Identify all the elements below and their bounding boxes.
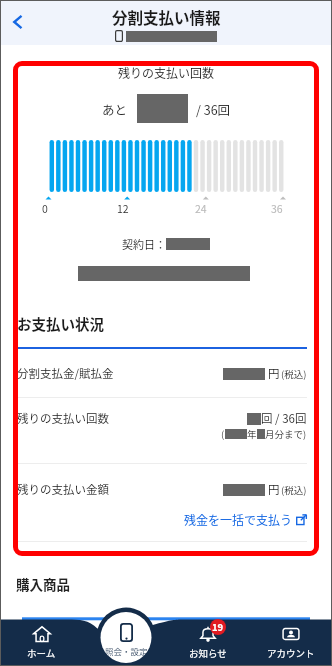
button[interactable]: 残りの支払い金額 (17, 481, 307, 498)
staticText: 契約日： (122, 236, 166, 252)
staticText: お知らせ (189, 646, 227, 660)
button[interactable]: 照会・設定 (101, 612, 152, 663)
button[interactable]: 戻る (7, 11, 29, 33)
staticText: 購入商品 (16, 574, 70, 594)
staticText: 月分まで) (265, 427, 307, 441)
staticText: 残りの支払い金額 (17, 481, 109, 498)
button[interactable]: 19 (166, 625, 249, 666)
button[interactable]: ホーム (0, 625, 83, 666)
staticText: 残金を一括で支払う (184, 511, 293, 528)
staticText: 12 (117, 201, 129, 216)
staticText: お支払い状況 (17, 313, 104, 334)
staticText: 照会・設定 (105, 645, 148, 657)
staticText: 残りの支払い回数 (13, 64, 319, 81)
staticText: 円 (268, 365, 280, 382)
staticText: 残りの支払い回数 (17, 410, 109, 427)
staticText: あと (102, 100, 128, 118)
staticText: アカウント (267, 646, 315, 660)
staticText: ( (221, 427, 225, 441)
staticText: 年 (247, 427, 257, 441)
staticText: (税込) (281, 483, 307, 497)
button[interactable]: 分割支払金/賦払金 (17, 365, 307, 382)
staticText: 円 (268, 481, 280, 498)
staticText: 24 (195, 201, 207, 216)
staticText: 回 / 36回 (261, 410, 307, 427)
staticText: 36 (271, 201, 283, 216)
staticText: 分割支払い情報 (112, 6, 221, 28)
staticText: (税込) (281, 367, 307, 381)
staticText: 分割支払金/賦払金 (17, 365, 114, 382)
button[interactable]: アカウント (249, 625, 332, 666)
staticText: 19 (212, 620, 224, 634)
staticText: / 36回 (196, 100, 231, 118)
staticText: ホーム (27, 646, 56, 660)
button[interactable]: 残金を一括で支払う (17, 511, 307, 528)
staticText: 0 (42, 201, 48, 216)
